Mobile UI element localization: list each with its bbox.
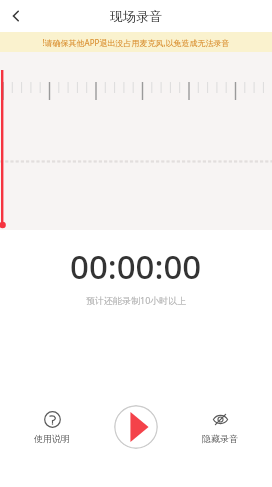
staticText: 预计还能录制10小时以上 bbox=[86, 294, 187, 306]
button[interactable]: 使用说明 bbox=[24, 407, 80, 448]
button[interactable]: 隐藏录音 bbox=[192, 407, 248, 448]
button[interactable]: 开始录音 bbox=[114, 405, 158, 449]
staticText: !请确保其他APP退出没占用麦克风,以免造成无法录音 bbox=[42, 37, 230, 48]
staticText: 00:00:00 bbox=[70, 244, 202, 289]
staticText: 使用说明 bbox=[34, 433, 70, 444]
button[interactable]: Back bbox=[0, 0, 32, 32]
staticText: 现场录音 bbox=[110, 8, 162, 24]
staticText: 隐藏录音 bbox=[202, 433, 238, 444]
